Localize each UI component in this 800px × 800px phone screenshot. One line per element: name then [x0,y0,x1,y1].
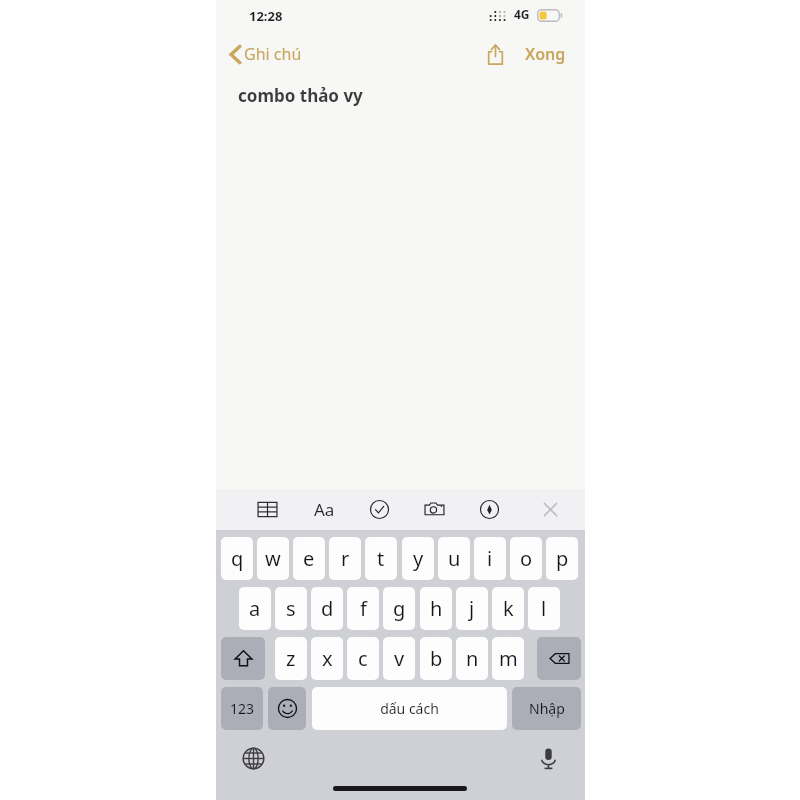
staticText: x [322,645,333,672]
button[interactable]: Shift [221,637,265,680]
button[interactable]: e [293,537,325,580]
button[interactable]: Dictation [532,742,564,774]
button[interactable]: Xong [517,32,574,76]
staticText: g [393,595,406,622]
staticText: h [430,595,443,622]
button[interactable]: v [383,637,415,680]
button[interactable]: a [239,587,271,630]
staticText: dấu cách [380,699,439,718]
button[interactable]: Checklist [362,489,396,530]
staticText: Aa [314,498,335,521]
staticText: y [413,545,424,572]
staticText: e [303,545,315,572]
staticText: 123 [230,699,255,718]
button[interactable]: Ghi chú [224,32,308,76]
button[interactable]: g [383,587,415,630]
button[interactable]: Share [473,32,517,76]
staticText: n [466,645,479,672]
button[interactable]: o [510,537,542,580]
button[interactable]: Text format [307,489,341,530]
staticText: a [249,595,261,622]
button[interactable]: t [365,537,397,580]
button[interactable]: f [347,587,379,630]
staticText: o [520,545,533,572]
staticText: r [341,545,350,572]
staticText: Xong [525,43,566,65]
staticText: u [448,545,461,572]
staticText: 12:28 [249,7,283,25]
staticText: j [469,595,475,622]
button[interactable]: dấu cách [312,687,507,730]
staticText: q [231,545,244,572]
button[interactable]: r [329,537,361,580]
staticText: t [377,545,385,572]
button[interactable]: 123 [221,687,263,730]
button[interactable]: p [546,537,578,580]
staticText: f [360,595,367,622]
button[interactable]: l [528,587,560,630]
button[interactable]: c [347,637,379,680]
button[interactable]: Backspace [537,637,581,680]
staticText: d [321,595,334,622]
button[interactable]: Insert table [250,489,284,530]
button[interactable]: Emoji [268,687,306,730]
button[interactable]: i [474,537,506,580]
button[interactable]: j [456,587,488,630]
staticText: m [499,645,518,672]
button[interactable]: Camera [417,489,451,530]
staticText: z [286,645,296,672]
staticText: s [286,595,296,622]
staticText: combo thảo vy [238,84,363,107]
button[interactable]: q [221,537,253,580]
staticText: p [556,545,569,572]
button[interactable]: x [311,637,343,680]
button[interactable]: Hide keyboard [533,489,567,530]
staticText: c [358,645,368,672]
button[interactable]: z [275,637,307,680]
staticText: w [265,545,281,572]
button[interactable]: Next keyboard [237,742,269,774]
staticText: l [541,595,547,622]
staticText: i [487,545,493,572]
button[interactable]: m [492,637,524,680]
button[interactable]: s [275,587,307,630]
button[interactable]: u [438,537,470,580]
staticText: v [394,645,405,672]
staticText: 4G [514,6,530,22]
button[interactable]: w [257,537,289,580]
button[interactable]: y [402,537,434,580]
staticText: Ghi chú [244,43,302,65]
button[interactable]: Markup [472,489,506,530]
staticText: Nhập [529,699,565,718]
staticText: b [430,645,443,672]
button[interactable]: d [311,587,343,630]
staticText: k [503,595,514,622]
button[interactable]: Nhập [512,687,581,730]
button[interactable]: n [456,637,488,680]
button[interactable]: h [420,587,452,630]
button[interactable]: b [420,637,452,680]
button[interactable]: k [492,587,524,630]
